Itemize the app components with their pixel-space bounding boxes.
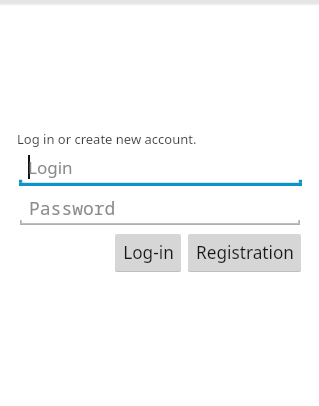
- staticText: Log in or create new account.: [17, 130, 197, 148]
- staticText: Login: [28, 156, 73, 179]
- button[interactable]: Password text field: [20, 195, 300, 225]
- button[interactable]: Log-in: [115, 234, 181, 271]
- button[interactable]: Login text field: [19, 153, 302, 186]
- staticText: Registration: [196, 241, 294, 264]
- staticText: Password: [29, 196, 116, 221]
- button[interactable]: Registration: [188, 234, 301, 271]
- staticText: Log-in: [123, 241, 174, 264]
